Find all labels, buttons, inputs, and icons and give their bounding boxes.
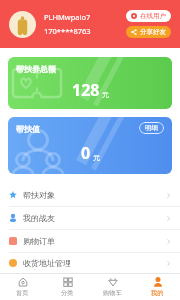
button[interactable]: 帮扶值 <box>8 117 172 174</box>
staticText: 分类 <box>61 289 74 297</box>
staticText: 我的 <box>151 289 164 297</box>
staticText: 128 <box>72 79 100 101</box>
staticText: 购物订单 <box>23 236 55 246</box>
staticText: 170****8763 <box>44 26 91 36</box>
button[interactable]: 收货地址管理 <box>0 253 180 273</box>
button[interactable]: 我的战友 <box>0 207 180 229</box>
staticText: PLHMwpaio7 <box>44 12 91 22</box>
staticText: 收货地址管理 <box>23 258 71 268</box>
staticText: 在线用户 <box>140 12 166 20</box>
button[interactable]: 购物车 <box>90 274 135 300</box>
staticText: 首页 <box>16 289 29 297</box>
staticText: 0 <box>81 142 91 164</box>
staticText: 明细 <box>145 124 158 132</box>
button[interactable]: 购物订单 <box>0 230 180 252</box>
button[interactable]: 我的 <box>135 274 180 300</box>
staticText: 元 <box>93 153 100 162</box>
staticText: 分享好友 <box>140 28 166 36</box>
button[interactable]: 在线用户 <box>126 10 171 22</box>
staticText: 帮扶券总额 <box>16 64 56 74</box>
button[interactable]: 分享好友 <box>126 26 171 38</box>
button[interactable]: 分类 <box>45 274 90 300</box>
button[interactable]: Avatar <box>9 11 36 38</box>
button[interactable]: 首页 <box>0 274 45 300</box>
staticText: 帮扶值 <box>16 124 40 134</box>
staticText: 我的战友 <box>23 213 55 223</box>
staticText: 购物车 <box>103 289 122 297</box>
staticText: 元 <box>102 90 109 99</box>
button[interactable]: 明细 <box>139 122 164 134</box>
button[interactable]: 帮扶券总额 <box>8 57 172 109</box>
button[interactable]: 帮扶对象 <box>0 184 180 206</box>
staticText: 帮扶对象 <box>23 190 55 200</box>
